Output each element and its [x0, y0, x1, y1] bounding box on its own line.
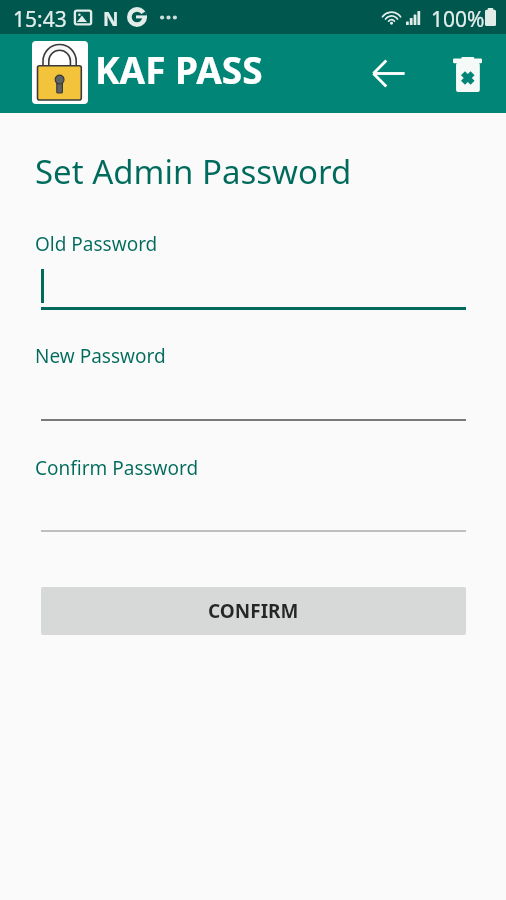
staticText: CONFIRM — [208, 598, 299, 624]
button[interactable]: Delete — [441, 48, 493, 100]
staticText: Old Password — [35, 231, 158, 257]
button[interactable]: Confirm Password — [35, 452, 466, 534]
staticText: Confirm Password — [35, 455, 199, 481]
staticText: 100% — [431, 5, 485, 34]
staticText: Set Admin Password — [35, 149, 352, 194]
staticText: N — [103, 6, 119, 32]
button[interactable]: CONFIRM — [41, 587, 466, 635]
button[interactable]: New Password — [35, 340, 466, 422]
staticText: 15:43 — [13, 5, 67, 34]
button[interactable]: Back — [363, 47, 415, 99]
staticText: KAF PASS — [95, 44, 263, 94]
staticText: New Password — [35, 343, 166, 369]
button[interactable]: Old Password — [35, 228, 466, 313]
